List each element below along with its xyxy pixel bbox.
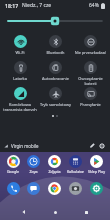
staticText: Autoobracanie <box>38 76 73 81</box>
staticText: Niedz., 7 cze <box>22 2 52 9</box>
button[interactable]: Nie przeszkadzać <box>73 33 108 59</box>
staticText: Tryb samolotowy <box>38 102 73 107</box>
button[interactable]: Wi-Fi <box>2 33 38 59</box>
staticText: 18:17 <box>5 2 19 9</box>
staticText: Nie przeszkadzać <box>73 50 108 55</box>
staticText: baterii <box>73 81 108 85</box>
button[interactable]: Komórkowa <box>2 85 38 111</box>
staticText: Latarka <box>2 76 38 81</box>
button[interactable]: Przesyłanie <box>73 85 108 111</box>
staticText: Przesyłanie <box>73 102 108 107</box>
staticText: 64% <box>89 2 99 9</box>
staticText: Virgin mobile <box>11 143 39 149</box>
staticText: Komórkowa <box>2 102 38 107</box>
staticText: Sklep Play <box>86 169 107 174</box>
button[interactable]: Sklep Play <box>86 155 107 174</box>
button[interactable] <box>23 182 44 195</box>
button[interactable]: Kalkulator <box>65 155 86 174</box>
staticText: transmisja danych <box>2 107 38 111</box>
staticText: Zoya <box>23 169 44 174</box>
button[interactable]: Brightness <box>8 14 102 28</box>
staticText: Kalkulator <box>65 169 86 174</box>
button[interactable]: Zoya <box>23 155 44 174</box>
button[interactable]: Home <box>48 205 62 219</box>
staticText: Oszczędzanie <box>73 76 108 81</box>
staticText: Google <box>3 169 23 174</box>
button[interactable]: Recents <box>79 205 93 219</box>
button[interactable] <box>65 182 86 195</box>
staticText: Zdjęcia <box>44 169 65 174</box>
staticText: Wi-Fi <box>2 50 38 55</box>
button[interactable]: Bluetooth <box>38 33 73 59</box>
button[interactable]: Autoobracanie <box>38 59 73 85</box>
button[interactable]: Settings <box>97 141 106 150</box>
button[interactable]: Back <box>17 205 31 219</box>
button[interactable]: Tryb samolotowy <box>38 85 73 111</box>
button[interactable]: Latarka <box>2 59 38 85</box>
staticText: Bluetooth <box>38 50 73 55</box>
button[interactable] <box>86 182 107 195</box>
button[interactable]: Google <box>3 155 23 174</box>
button[interactable]: Edit tiles <box>88 141 97 150</box>
button[interactable] <box>3 182 23 195</box>
button[interactable] <box>44 182 65 195</box>
button[interactable]: Oszczędzanie <box>73 59 108 85</box>
button[interactable]: Zdjęcia <box>44 155 65 174</box>
